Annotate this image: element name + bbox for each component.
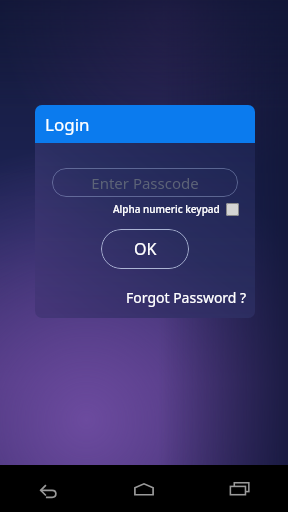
staticText: Alpha numeric keypad bbox=[113, 202, 220, 216]
staticText: OK bbox=[134, 238, 157, 260]
button[interactable]: Alpha numeric keypad bbox=[113, 202, 239, 216]
button[interactable]: Back bbox=[0, 465, 96, 512]
staticText: Login bbox=[45, 113, 90, 136]
staticText: Forgot Password ? bbox=[126, 288, 247, 307]
button[interactable]: Forgot Password ? bbox=[124, 286, 249, 309]
button[interactable]: Recent apps bbox=[192, 465, 288, 512]
button[interactable]: Home bbox=[96, 465, 192, 512]
button[interactable]: Enter Passcode bbox=[52, 168, 238, 197]
staticText: Enter Passcode bbox=[91, 173, 199, 193]
button[interactable]: OK bbox=[101, 229, 189, 269]
